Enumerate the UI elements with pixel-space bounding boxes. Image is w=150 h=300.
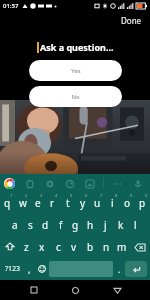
button[interactable]: 6	[75, 192, 90, 214]
staticText: k	[118, 218, 124, 232]
staticText: r	[50, 196, 55, 210]
button[interactable]: 0	[135, 192, 150, 214]
staticText: a	[12, 218, 18, 232]
staticText: ?123	[5, 264, 21, 274]
staticText: 7	[100, 193, 103, 198]
button[interactable]: 4	[45, 192, 60, 214]
button[interactable]: n	[98, 236, 114, 258]
staticText: 5	[70, 193, 73, 198]
staticText: Yes	[71, 67, 81, 75]
staticText: z	[24, 240, 29, 254]
staticText: o	[124, 196, 131, 210]
button[interactable]: ,	[23, 261, 35, 277]
staticText: 9	[130, 193, 133, 198]
button[interactable]: Google	[4, 178, 15, 189]
button[interactable]: a	[7, 214, 23, 236]
staticText: b	[87, 240, 94, 254]
button[interactable]: Emoji	[35, 261, 49, 277]
button[interactable]: Backspace	[130, 236, 150, 258]
staticText: m	[117, 240, 127, 254]
staticText: v	[71, 240, 77, 254]
staticText: 01:57	[3, 2, 19, 10]
staticText: No	[71, 93, 80, 101]
button[interactable]: v	[66, 236, 82, 258]
button[interactable]: Back	[109, 282, 125, 298]
button[interactable]: 5	[60, 192, 75, 214]
button[interactable]: Themes	[63, 177, 76, 190]
staticText: 6	[85, 193, 88, 198]
button[interactable]: z	[19, 236, 34, 258]
staticText: u	[94, 196, 101, 210]
staticText: q	[4, 196, 11, 210]
staticText: j	[104, 218, 107, 232]
staticText: x	[39, 240, 45, 254]
button[interactable]: m	[114, 236, 130, 258]
staticText: .	[118, 263, 121, 275]
staticText: d	[42, 218, 49, 232]
staticText: g	[72, 218, 79, 232]
button[interactable]: Home	[67, 282, 83, 298]
staticText: i	[111, 196, 114, 210]
staticText: t	[66, 196, 70, 210]
button[interactable]: 9	[120, 192, 135, 214]
staticText: h	[87, 218, 94, 232]
button[interactable]: Clipboard	[23, 177, 36, 190]
staticText: 1	[10, 193, 13, 198]
button[interactable]: Enter	[125, 261, 147, 277]
button[interactable]: 3	[30, 192, 45, 214]
staticText: 2	[25, 193, 28, 198]
staticText: w	[19, 196, 27, 210]
button[interactable]: s	[23, 214, 38, 236]
button[interactable]: x	[34, 236, 50, 258]
button[interactable]: 8	[105, 192, 120, 214]
staticText: y	[80, 196, 86, 210]
button[interactable]: No	[29, 86, 122, 107]
staticText: c	[56, 240, 61, 254]
staticText: 3	[40, 193, 43, 198]
staticText: Ask a question...	[40, 41, 114, 53]
button[interactable]: d	[38, 214, 53, 236]
button[interactable]: Done	[113, 13, 150, 28]
button[interactable]: Voice input	[131, 177, 144, 190]
button[interactable]: Shift	[0, 236, 19, 258]
staticText: ,	[28, 263, 31, 275]
button[interactable]: Recents	[26, 282, 42, 298]
button[interactable]: 2	[15, 192, 30, 214]
staticText: 0	[145, 193, 148, 198]
staticText: p	[139, 196, 146, 210]
staticText: l	[134, 218, 137, 232]
button[interactable]: c	[50, 236, 66, 258]
button[interactable]: k	[113, 214, 128, 236]
staticText: 8	[115, 193, 118, 198]
button[interactable]: Settings	[43, 177, 56, 190]
button[interactable]: Yes	[29, 60, 122, 81]
staticText: e	[35, 196, 41, 210]
staticText: f	[59, 218, 63, 232]
staticText: n	[103, 240, 110, 254]
staticText: Done	[121, 15, 142, 26]
button[interactable]: 1	[0, 192, 15, 214]
button[interactable]: j	[98, 214, 113, 236]
button[interactable]: ?123	[3, 261, 23, 277]
button[interactable]: .	[113, 261, 125, 277]
button[interactable]: 7	[90, 192, 105, 214]
staticText: 4	[55, 193, 58, 198]
button[interactable]: h	[83, 214, 98, 236]
button[interactable]: f	[53, 214, 68, 236]
button[interactable]: g	[68, 214, 83, 236]
button[interactable]: l	[128, 214, 143, 236]
button[interactable]: More	[111, 177, 124, 190]
staticText: s	[28, 218, 33, 232]
button[interactable]: b	[82, 236, 98, 258]
button[interactable]: Sticker	[83, 177, 96, 190]
